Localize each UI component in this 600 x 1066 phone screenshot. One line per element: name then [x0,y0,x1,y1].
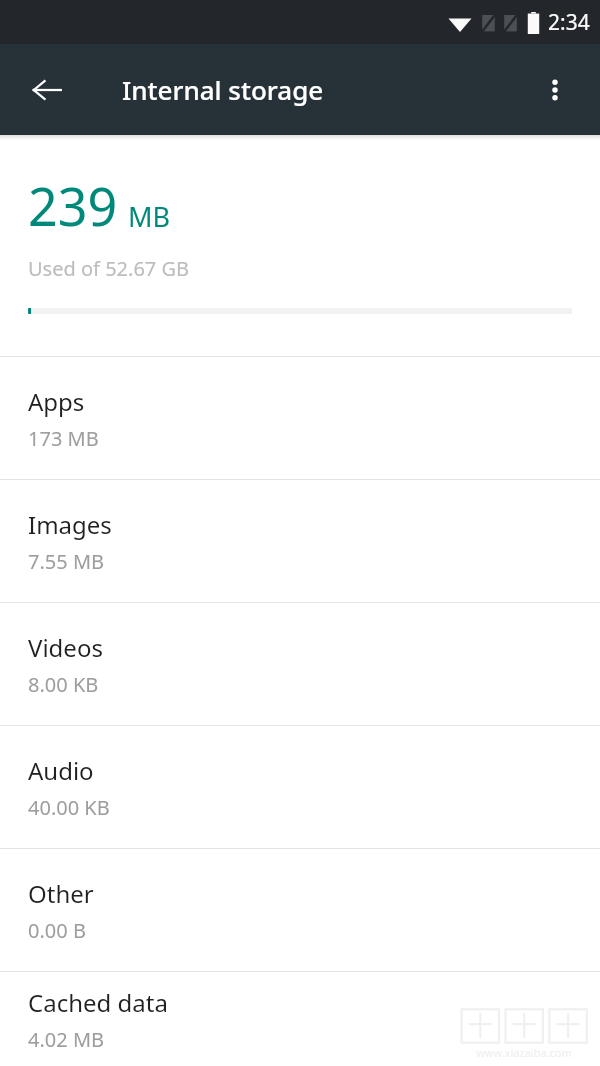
button[interactable]: Videos [0,603,600,726]
staticText: 0.00 B [28,917,86,944]
staticText: Used of 52.67 GB [28,255,190,282]
button[interactable]: More options [532,67,578,113]
staticText: 173 MB [28,425,99,452]
staticText: 8.00 KB [28,671,99,698]
staticText: Images [28,508,112,541]
staticText: www.xiazaiba.com [476,1045,572,1060]
staticText: 4.02 MB [28,1026,105,1053]
staticText: Apps [28,385,85,418]
staticText: Other [28,877,94,910]
staticText: Cached data [28,986,168,1019]
staticText: Videos [28,631,103,664]
button[interactable]: Back [22,65,72,115]
button[interactable]: 239 [0,140,600,357]
button[interactable]: Audio [0,726,600,849]
staticText: 239 [28,170,118,241]
button[interactable]: Apps [0,357,600,480]
staticText: 2:34 [548,8,590,37]
staticText: 7.55 MB [28,548,105,575]
staticText: Audio [28,754,94,787]
staticText: 40.00 KB [28,794,110,821]
button[interactable]: Cached data [0,972,600,1066]
staticText: Internal storage [122,72,324,107]
button[interactable]: Other [0,849,600,972]
button[interactable]: Images [0,480,600,603]
staticText: MB [128,198,171,235]
